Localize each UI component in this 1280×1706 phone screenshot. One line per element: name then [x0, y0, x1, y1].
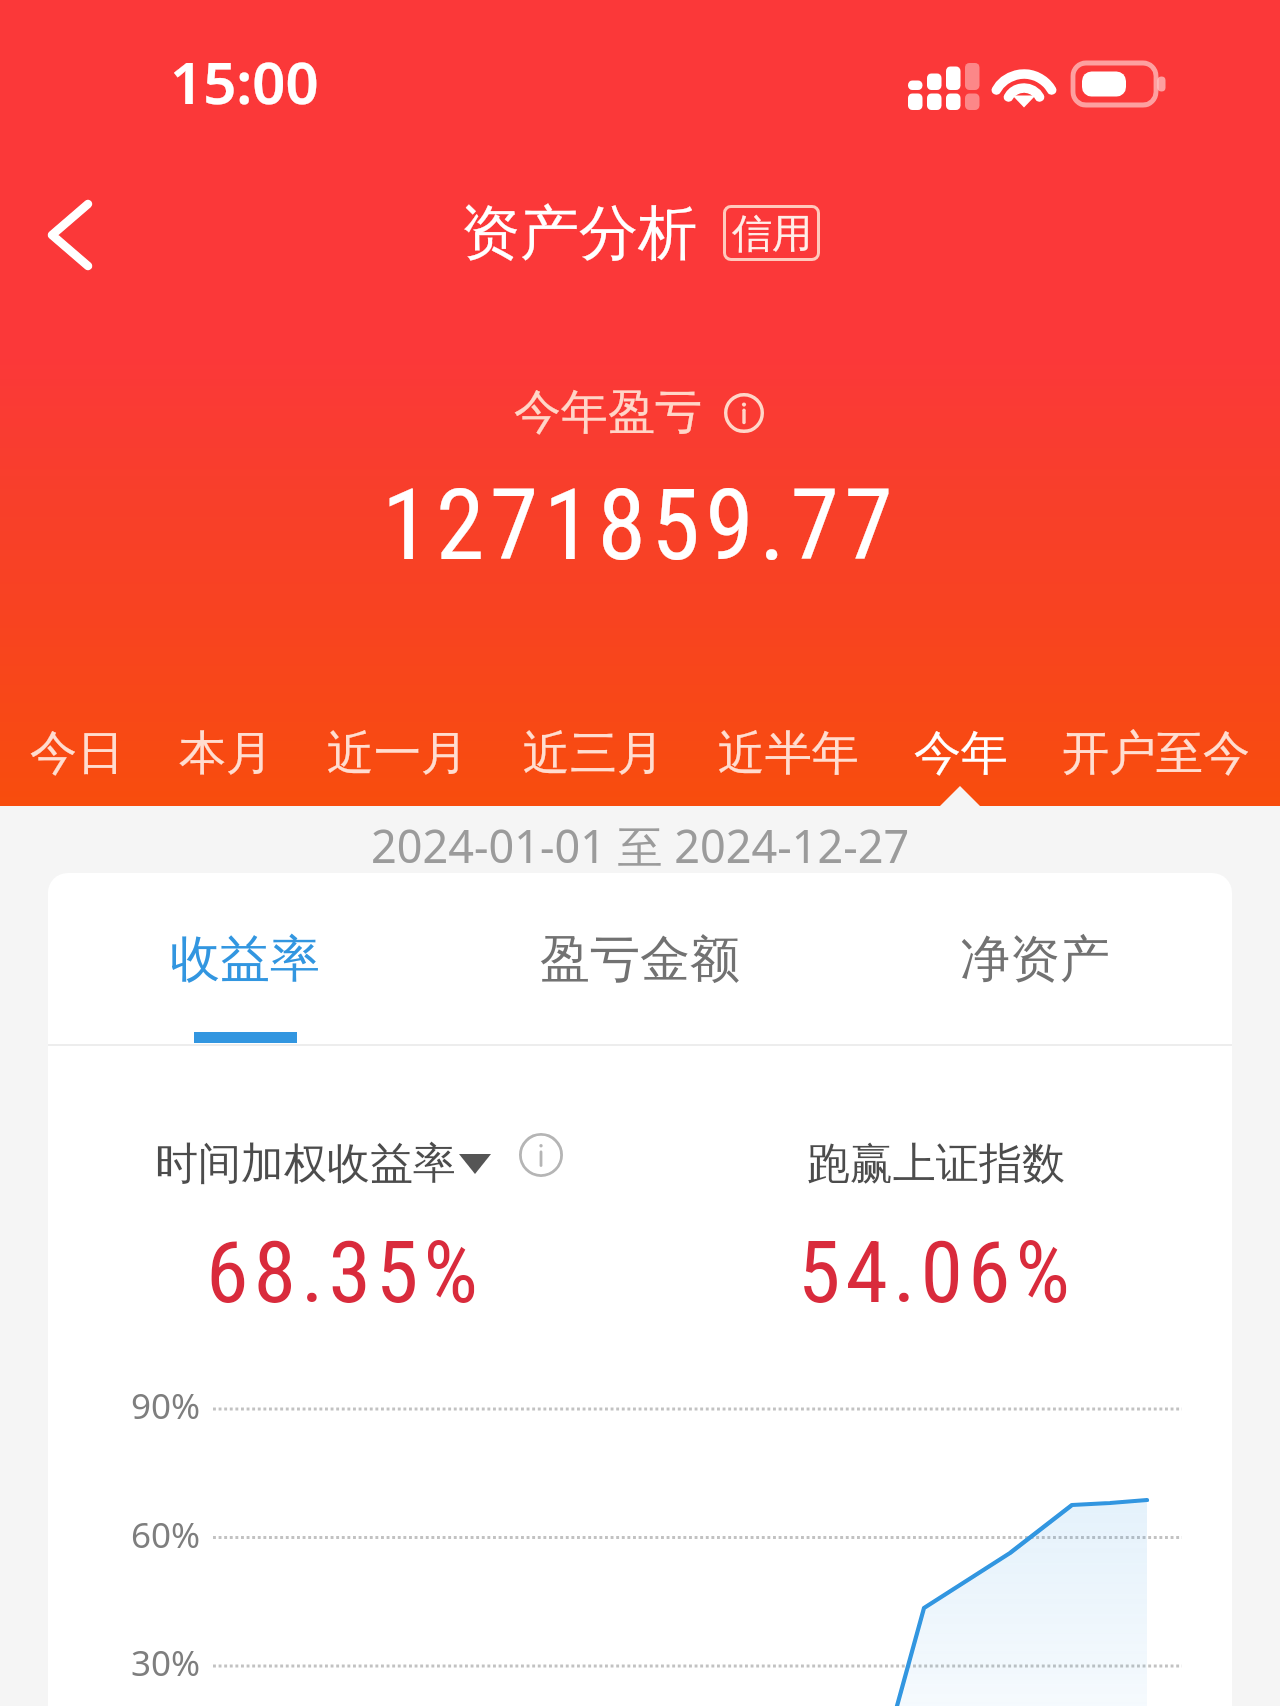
staticText: 2024-01-01 至 2024-12-27: [371, 815, 910, 876]
staticText: 今日: [30, 724, 124, 783]
staticText: 净资产: [960, 928, 1110, 991]
staticText: 今年盈亏: [514, 383, 702, 442]
button[interactable]: 今日: [22, 714, 132, 793]
staticText: 1271859.77: [382, 468, 899, 583]
staticText: 90%: [131, 1382, 201, 1430]
button[interactable]: 近一月: [319, 714, 476, 793]
staticText: 今年: [914, 724, 1008, 783]
button[interactable]: 净资产: [837, 873, 1232, 1044]
staticText: 60%: [131, 1511, 201, 1559]
button[interactable]: 近三月: [515, 714, 672, 793]
staticText: 近三月: [523, 724, 664, 783]
button[interactable]: 开户至今: [1054, 714, 1258, 793]
staticText: 收益率: [170, 928, 320, 991]
staticText: 信用: [732, 208, 812, 258]
staticText: 盈亏金额: [540, 928, 740, 991]
button[interactable]: 收益率: [48, 873, 442, 1044]
staticText: 跑赢上证指数: [807, 1137, 1065, 1191]
button[interactable]: Back: [10, 175, 130, 295]
button[interactable]: 时间加权收益率: [155, 1137, 491, 1191]
staticText: 资产分析: [461, 196, 697, 270]
staticText: 15:00: [170, 42, 319, 121]
button[interactable]: 盈亏金额: [442, 873, 837, 1044]
staticText: 本月: [179, 724, 273, 783]
staticText: 开户至今: [1062, 724, 1250, 783]
staticText: 30%: [131, 1639, 201, 1687]
staticText: 近一月: [327, 724, 468, 783]
button[interactable]: 近半年: [710, 714, 867, 793]
staticText: 68.35%: [206, 1222, 483, 1323]
button[interactable]: About this year's profit and loss: [721, 390, 767, 436]
staticText: 近半年: [718, 724, 859, 783]
button[interactable]: 本月: [171, 714, 281, 793]
button[interactable]: 今年: [906, 714, 1016, 793]
staticText: 54.06%: [798, 1222, 1075, 1323]
button[interactable]: About time weighted return: [518, 1132, 564, 1178]
staticText: 时间加权收益率: [155, 1137, 456, 1191]
